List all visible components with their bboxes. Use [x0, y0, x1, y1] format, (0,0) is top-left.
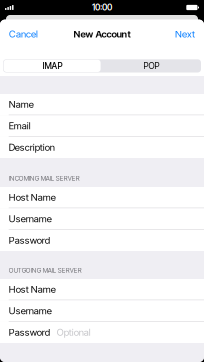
staticText: Password	[9, 326, 50, 338]
button[interactable]: Name	[0, 94, 204, 115]
staticText: INCOMING MAIL SERVER	[9, 175, 80, 182]
button[interactable]: Username	[0, 208, 204, 230]
staticText: Username	[9, 213, 52, 224]
button[interactable]: Description	[0, 137, 204, 158]
staticText: Description	[9, 141, 55, 153]
button[interactable]: Password	[0, 230, 204, 251]
button[interactable]: Cancel	[0, 24, 45, 44]
button[interactable]: Password	[0, 322, 204, 343]
staticText: New Account	[73, 28, 130, 40]
staticText: Name	[9, 99, 34, 110]
button[interactable]: Username	[0, 300, 204, 322]
staticText: IMAP	[42, 61, 62, 71]
staticText: Email	[9, 120, 31, 131]
button[interactable]: POP	[102, 59, 201, 72]
staticText: Next	[175, 28, 195, 40]
staticText: Password	[9, 234, 50, 246]
staticText: Host Name	[9, 283, 56, 295]
button[interactable]: Host Name	[0, 187, 204, 208]
staticText: OUTGOING MAIL SERVER	[9, 267, 82, 274]
button[interactable]: Host Name	[0, 279, 204, 300]
staticText: Host Name	[9, 191, 56, 203]
button[interactable]: Next	[168, 24, 204, 44]
button[interactable]: IMAP	[3, 59, 102, 72]
button[interactable]: Email	[0, 115, 204, 137]
staticText: 10:00	[92, 2, 112, 13]
staticText: POP	[143, 61, 159, 71]
staticText: Username	[9, 305, 52, 316]
staticText: Optional	[57, 326, 91, 338]
staticText: Cancel	[9, 28, 38, 40]
